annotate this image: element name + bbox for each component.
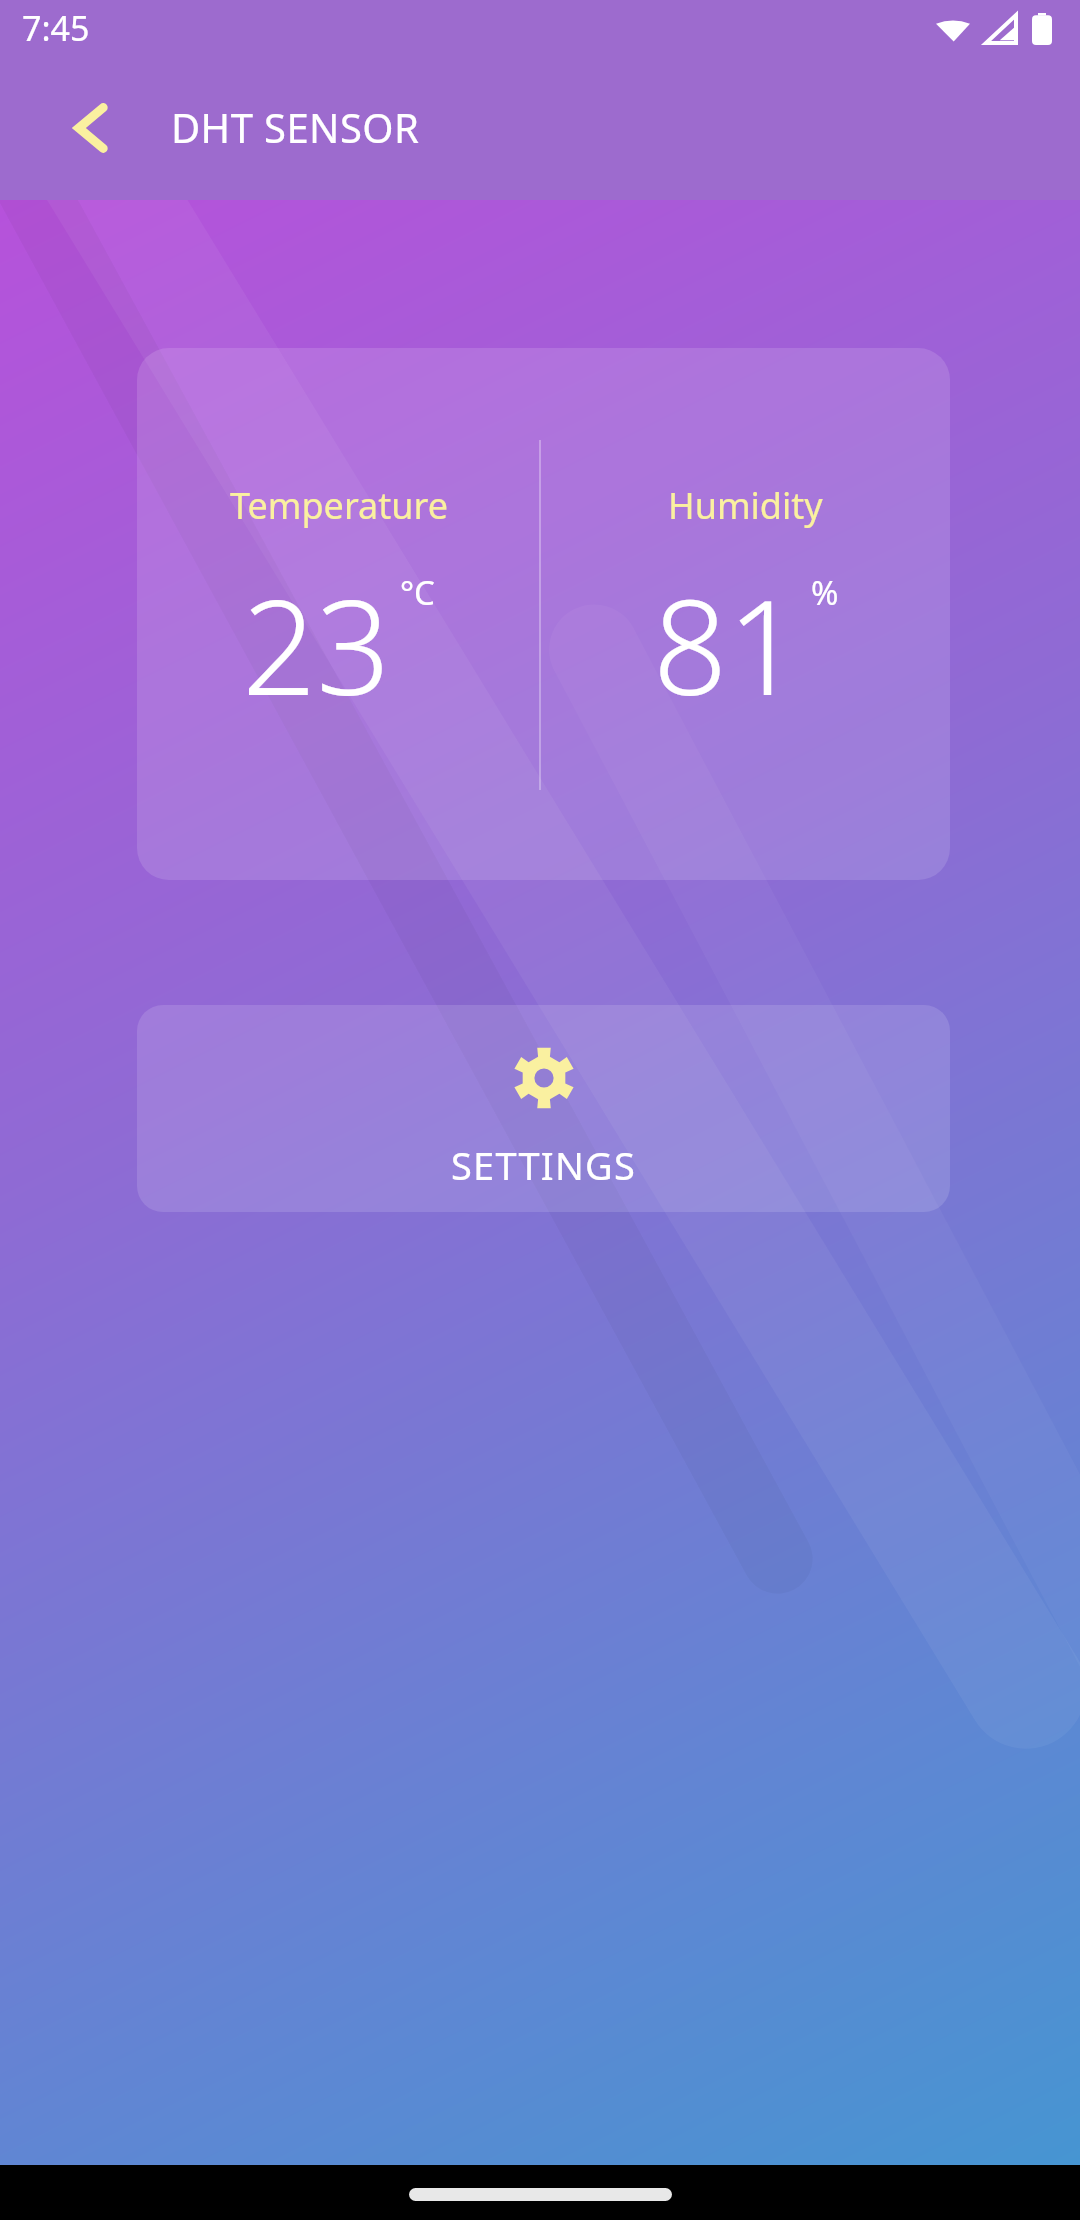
- staticText: °C: [400, 570, 435, 615]
- staticText: %: [811, 570, 839, 615]
- staticText: 23: [242, 556, 391, 733]
- button[interactable]: Temperature: [137, 348, 950, 880]
- button[interactable]: Back: [34, 72, 146, 184]
- other: Settings: [513, 1047, 575, 1109]
- staticText: SETTINGS: [451, 1139, 636, 1191]
- staticText: Temperature: [230, 481, 448, 530]
- button[interactable]: Settings: [137, 1005, 950, 1212]
- staticText: 7:45: [22, 5, 90, 51]
- staticText: Humidity: [668, 481, 823, 530]
- staticText: DHT SENSOR: [171, 100, 420, 154]
- staticText: 81: [653, 556, 802, 733]
